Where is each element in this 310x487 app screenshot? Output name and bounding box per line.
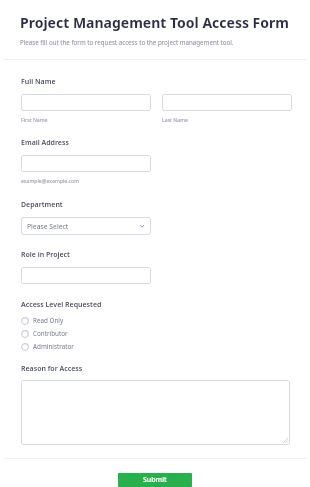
button[interactable]: Contributor — [0, 327, 310, 340]
staticText: Full Name — [21, 77, 56, 87]
staticText: Access Level Requested — [21, 300, 102, 310]
staticText: Department — [21, 200, 63, 210]
button[interactable]: Read Only — [0, 314, 310, 327]
staticText: Email Address — [21, 138, 69, 148]
staticText: Read Only — [33, 316, 64, 325]
staticText: Role in Project — [21, 250, 70, 260]
staticText: Contributor — [33, 329, 68, 338]
staticText: Administrator — [33, 342, 74, 351]
button[interactable]: Last Name — [162, 94, 292, 111]
staticText: Submit — [143, 475, 167, 485]
staticText: Please Select — [27, 222, 69, 231]
staticText: Project Management Tool Access Form — [20, 13, 289, 32]
button[interactable]: First Name — [21, 94, 151, 111]
staticText: Please fill out the form to request acce… — [20, 38, 234, 46]
button[interactable]: Email Address — [21, 155, 151, 172]
button[interactable]: Reason for Access — [21, 380, 290, 445]
button[interactable]: Role in Project — [21, 267, 151, 284]
button[interactable]: Submit — [118, 473, 192, 487]
staticText: First Name — [21, 116, 48, 123]
staticText: Reason for Access — [21, 364, 83, 374]
button[interactable]: Please Select — [21, 217, 151, 235]
staticText: Last Name — [162, 116, 188, 123]
staticText: example@example.com — [21, 177, 80, 184]
button[interactable]: Administrator — [0, 340, 310, 353]
